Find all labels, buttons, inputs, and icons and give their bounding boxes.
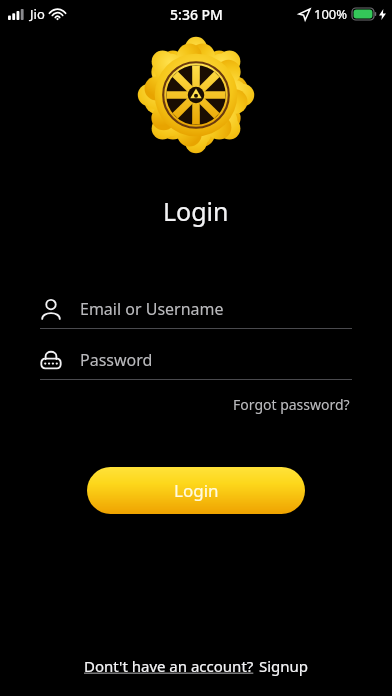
other: Password: [40, 349, 62, 371]
button[interactable]: Forgot password?: [231, 392, 352, 417]
button[interactable]: Dont't have an account?: [84, 654, 254, 678]
staticText: 5:36 PM: [170, 5, 223, 24]
staticText: Password: [80, 349, 153, 371]
staticText: 100%: [314, 5, 348, 23]
staticText: Forgot password?: [233, 395, 350, 414]
staticText: Jio: [30, 5, 45, 23]
button[interactable]: Signup: [259, 654, 309, 678]
button[interactable]: Login: [87, 467, 305, 514]
button[interactable]: Email or Username: [40, 290, 352, 329]
other: Email or Username: [40, 298, 62, 320]
staticText: Login: [163, 194, 229, 228]
staticText: Dont't have an account?: [84, 656, 254, 676]
staticText: Signup: [259, 656, 309, 676]
button[interactable]: Password: [40, 341, 352, 380]
staticText: Email or Username: [80, 298, 224, 320]
staticText: Login: [174, 479, 219, 502]
